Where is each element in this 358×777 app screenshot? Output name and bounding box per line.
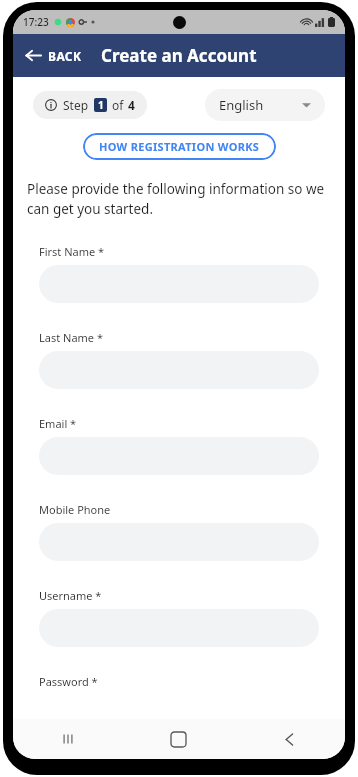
staticText: 17:23 — [23, 15, 49, 29]
button[interactable]: Back — [234, 719, 345, 759]
staticText: of — [112, 97, 124, 113]
staticText: 4 — [128, 97, 135, 113]
staticText: 1 — [98, 98, 104, 112]
button[interactable]: Home — [123, 719, 234, 759]
button[interactable]: English — [205, 89, 325, 121]
staticText: HOW REGISTRATION WORKS — [99, 139, 260, 154]
staticText: Username * — [39, 588, 102, 603]
staticText: First Name * — [39, 244, 105, 259]
staticText: Mobile Phone — [39, 502, 111, 517]
staticText: Step — [63, 97, 89, 113]
staticText: Create an Account — [101, 44, 257, 67]
staticText: BACK — [48, 48, 82, 64]
staticText: Last Name * — [39, 330, 103, 345]
button[interactable]: Step — [33, 91, 147, 119]
button[interactable]: BACK — [13, 41, 92, 70]
button[interactable]: Recent apps — [13, 719, 123, 759]
staticText: Please provide the following information… — [27, 180, 331, 218]
button[interactable]: HOW REGISTRATION WORKS — [83, 133, 276, 160]
staticText: Email * — [39, 416, 77, 431]
staticText: Password * — [39, 674, 98, 689]
staticText: English — [219, 96, 264, 114]
